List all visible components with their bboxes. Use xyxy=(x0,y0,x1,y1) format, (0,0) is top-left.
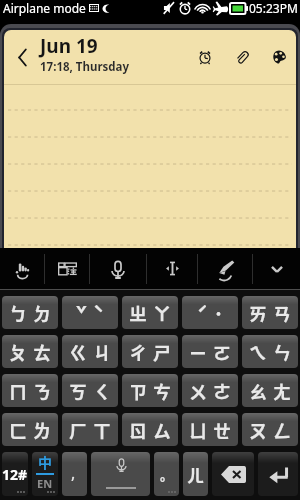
staticText: 17:18, Thursday xyxy=(40,59,130,75)
staticText: ˙ xyxy=(214,300,223,326)
button[interactable]: Space xyxy=(91,452,150,496)
staticText: ㄩ xyxy=(189,417,207,443)
staticText: ˋ xyxy=(93,300,104,326)
staticText: Airplane mode xyxy=(3,0,86,16)
button[interactable]: ㄧㄛ xyxy=(182,335,238,368)
staticText: ㄆ xyxy=(9,339,27,365)
button[interactable]: ㄟㄣ xyxy=(242,335,298,368)
button[interactable]: ㄆㄊ xyxy=(2,335,58,368)
button[interactable]: ㄇㄋ xyxy=(2,374,58,407)
staticText: ㄖ xyxy=(129,417,147,443)
staticText: ㄡ xyxy=(249,417,267,443)
staticText: ㄊ xyxy=(33,339,51,365)
staticText: ㄝ xyxy=(213,417,231,443)
staticText: ˇ xyxy=(76,300,87,326)
button[interactable]: ㄨㄜ xyxy=(182,374,238,407)
staticText: 12# xyxy=(2,465,28,484)
staticText: ㄎ xyxy=(69,378,87,404)
button[interactable]: ㄩㄝ xyxy=(182,413,238,446)
button[interactable]: ˊ˙ xyxy=(182,296,238,329)
staticText: ㄉ xyxy=(33,300,51,326)
staticText: 05:23PM xyxy=(249,0,298,16)
staticText: ˊ xyxy=(197,300,208,326)
button[interactable]: ㄏㄒ xyxy=(62,413,118,446)
button[interactable]: Enter xyxy=(258,452,298,496)
staticText: ㄤ xyxy=(273,378,291,404)
button[interactable]: Back xyxy=(4,30,40,84)
button[interactable]: Hide keyboard xyxy=(253,248,300,289)
button[interactable]: ㄡㄥ xyxy=(242,413,298,446)
staticText: ㄠ xyxy=(249,378,267,404)
staticText: 。 xyxy=(160,465,174,484)
button[interactable]: Er xyxy=(183,452,208,496)
button[interactable]: Comma xyxy=(62,452,87,496)
staticText: ㄈ xyxy=(9,417,27,443)
button[interactable]: ㄔㄕ xyxy=(122,335,178,368)
staticText: ㄑ xyxy=(93,378,111,404)
staticText: ㄋ xyxy=(33,378,51,404)
button[interactable]: Switch Chinese English xyxy=(32,452,58,496)
button[interactable]: ㄖㄙ xyxy=(122,413,178,446)
staticText: ㄙ xyxy=(153,417,171,443)
staticText: Jun 19 xyxy=(40,33,98,59)
staticText: ㄨ xyxy=(189,378,207,404)
button[interactable]: Attach file xyxy=(231,46,253,68)
button[interactable]: Period xyxy=(154,452,179,496)
staticText: ㄣ xyxy=(273,339,291,365)
button[interactable]: ㄓㄚ xyxy=(122,296,178,329)
button[interactable]: ㄍㄐ xyxy=(62,335,118,368)
staticText: ㄌ xyxy=(33,417,51,443)
staticText: ㄟ xyxy=(249,339,267,365)
button[interactable]: Pen tool xyxy=(198,248,252,289)
staticText: ㄥ xyxy=(273,417,291,443)
staticText: ㄐ xyxy=(93,339,111,365)
button[interactable]: Move cursor xyxy=(147,248,197,289)
button[interactable]: ㄞㄢ xyxy=(242,296,298,329)
staticText: ㄚ xyxy=(153,300,171,326)
staticText: ㄕ xyxy=(153,339,171,365)
staticText: ㄏ xyxy=(69,417,87,443)
button[interactable]: Voice input xyxy=(90,248,146,289)
staticText: ㄦ xyxy=(187,462,204,487)
staticText: ㄇ xyxy=(9,378,27,404)
button[interactable]: Keyboard layout xyxy=(45,248,89,289)
button[interactable]: Set reminder xyxy=(194,46,216,68)
staticText: ㄘ xyxy=(153,378,171,404)
staticText: ㄢ xyxy=(273,300,291,326)
button[interactable]: ㄈㄌ xyxy=(2,413,58,446)
staticText: ㄅ xyxy=(9,300,27,326)
staticText: EN xyxy=(37,476,53,490)
button[interactable]: Handwriting input xyxy=(0,248,44,289)
button[interactable]: ˇˋ xyxy=(62,296,118,329)
button[interactable]: ㄗㄘ xyxy=(122,374,178,407)
staticText: ㄓ xyxy=(129,300,147,326)
button[interactable]: Change theme xyxy=(268,46,290,68)
button[interactable]: ㄎㄑ xyxy=(62,374,118,407)
button[interactable]: Numbers and symbols xyxy=(2,452,28,496)
button[interactable]: ㄅㄉ xyxy=(2,296,58,329)
staticText: ㄗ xyxy=(129,378,147,404)
staticText: ㄞ xyxy=(249,300,267,326)
staticText: ㄧ xyxy=(189,339,207,365)
staticText: 中 xyxy=(38,452,52,472)
staticText: ㄜ xyxy=(213,378,231,404)
staticText: ㄒ xyxy=(93,417,111,443)
button[interactable]: Backspace xyxy=(212,452,254,496)
staticText: , xyxy=(71,462,76,484)
staticText: ㄛ xyxy=(213,339,231,365)
staticText: ㄔ xyxy=(129,339,147,365)
button[interactable]: ㄠㄤ xyxy=(242,374,298,407)
staticText: ㄍ xyxy=(69,339,87,365)
